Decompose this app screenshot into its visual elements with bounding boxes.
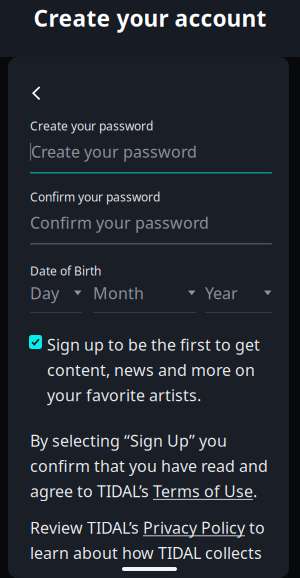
staticText: Confirm your password — [30, 212, 209, 233]
staticText: Sign up to be the first to get content, … — [47, 334, 260, 406]
staticText: Day — [30, 282, 59, 304]
staticText: Confirm your password — [30, 189, 160, 205]
staticText: Month — [93, 282, 144, 304]
staticText: Create your account — [33, 3, 266, 33]
staticText: Create your password — [30, 118, 153, 134]
staticText: Create your password — [31, 141, 197, 162]
button[interactable]: Back — [30, 74, 64, 106]
button[interactable]: Year — [205, 283, 272, 313]
staticText: Review TIDAL’s Privacy Policy to learn a… — [30, 517, 265, 563]
staticText: Year — [205, 282, 238, 304]
staticText: Date of Birth — [30, 263, 101, 279]
staticText: By selecting “Sign Up” you confirm that … — [30, 430, 268, 502]
button[interactable]: Month — [93, 283, 196, 313]
button[interactable]: Sign up to be the first to get content, … — [29, 334, 271, 406]
button[interactable]: Day — [30, 283, 82, 313]
